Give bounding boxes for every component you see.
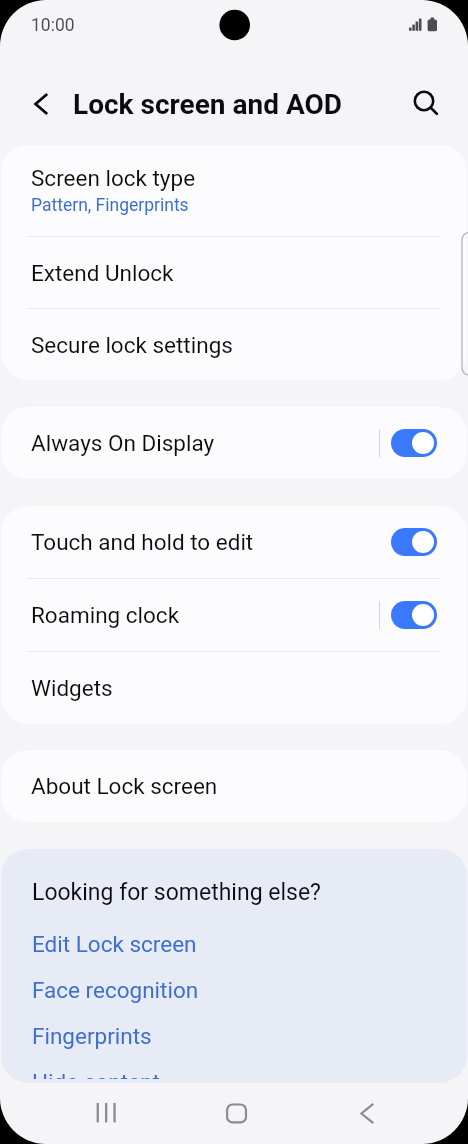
- staticText: Always On Display: [31, 430, 215, 456]
- button[interactable]: Widgets: [1, 652, 467, 724]
- staticText: Face recognition: [32, 977, 199, 1003]
- staticText: Hide content: [32, 1069, 160, 1079]
- staticText: Extend Unlock: [31, 260, 174, 286]
- staticText: Touch and hold to edit: [31, 529, 254, 555]
- button[interactable]: Home: [206, 1083, 266, 1143]
- button[interactable]: Back: [22, 84, 62, 124]
- staticText: Screen lock type: [31, 165, 196, 191]
- staticText: Looking for something else?: [32, 879, 321, 906]
- button[interactable]: Roaming clock: [1, 579, 467, 651]
- button[interactable]: Search: [406, 84, 446, 124]
- button[interactable]: Touch and hold to edit: [1, 506, 467, 578]
- staticText: 10:00: [31, 15, 75, 36]
- button[interactable]: Recents: [76, 1083, 136, 1143]
- button[interactable]: Always On Display: [1, 407, 467, 479]
- button[interactable]: Edit Lock screen: [32, 927, 467, 961]
- staticText: Edit Lock screen: [32, 931, 197, 957]
- staticText: Lock screen and AOD: [73, 88, 343, 121]
- button[interactable]: Fingerprints: [32, 1019, 467, 1053]
- staticText: Widgets: [31, 675, 113, 701]
- button[interactable]: Face recognition: [32, 973, 467, 1007]
- button[interactable]: Screen lock type: [1, 145, 467, 236]
- staticText: Secure lock settings: [31, 332, 233, 358]
- staticText: About Lock screen: [31, 773, 218, 799]
- button[interactable]: [391, 601, 437, 629]
- button[interactable]: Back: [337, 1083, 397, 1143]
- button[interactable]: [391, 429, 437, 457]
- button[interactable]: Hide content: [32, 1065, 467, 1083]
- staticText: Fingerprints: [32, 1023, 152, 1049]
- staticText: Pattern, Fingerprints: [31, 195, 189, 216]
- button[interactable]: [391, 528, 437, 556]
- button[interactable]: About Lock screen: [1, 750, 467, 822]
- button[interactable]: Secure lock settings: [1, 309, 467, 380]
- staticText: Roaming clock: [31, 602, 180, 628]
- button[interactable]: Extend Unlock: [1, 237, 467, 308]
